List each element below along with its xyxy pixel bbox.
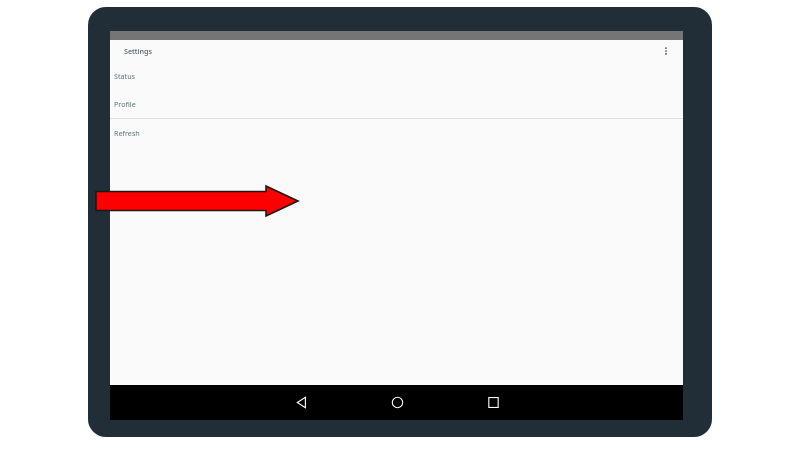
- staticText: Settings: [124, 46, 152, 56]
- button[interactable]: Status: [110, 62, 683, 90]
- staticText: Refresh: [114, 128, 140, 138]
- staticText: Profile: [114, 99, 136, 109]
- button[interactable]: Profile: [110, 90, 683, 118]
- staticText: Status: [114, 71, 136, 81]
- button[interactable]: Back: [253, 385, 349, 420]
- button[interactable]: Refresh: [110, 119, 683, 147]
- button[interactable]: Recent apps: [445, 385, 541, 420]
- button[interactable]: Home: [349, 385, 445, 420]
- button[interactable]: More options: [658, 43, 674, 59]
